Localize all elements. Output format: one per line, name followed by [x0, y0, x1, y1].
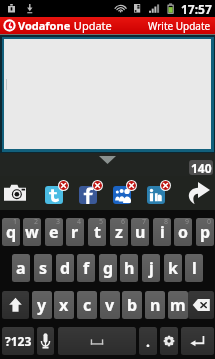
- button[interactable]: x: [54, 291, 74, 319]
- staticText: q: [6, 221, 17, 243]
- staticText: r: [71, 221, 79, 243]
- button[interactable]: r: [66, 218, 84, 246]
- staticText: Write Update: [148, 19, 211, 33]
- staticText: 6: [121, 218, 126, 227]
- button[interactable]: a: [12, 254, 30, 282]
- staticText: j: [149, 257, 154, 279]
- button[interactable]: Space: [58, 327, 136, 355]
- staticText: a: [16, 257, 26, 279]
- staticText: y: [37, 294, 47, 316]
- staticText: 5: [99, 218, 104, 227]
- button[interactable]: Hide keyboard: [99, 156, 116, 164]
- button[interactable]: i: [153, 218, 171, 246]
- button[interactable]: j: [142, 254, 160, 282]
- button[interactable]: h: [120, 254, 138, 282]
- button[interactable]: n: [145, 291, 165, 319]
- staticText: ?123: [5, 333, 32, 349]
- button[interactable]: m: [168, 291, 188, 319]
- staticText: o: [178, 221, 189, 243]
- button[interactable]: ?123: [2, 327, 34, 355]
- button[interactable]: .: [139, 327, 157, 355]
- staticText: u: [135, 221, 146, 243]
- staticText: v: [105, 294, 115, 316]
- staticText: t: [94, 221, 101, 243]
- button[interactable]: Enter: [181, 327, 214, 355]
- staticText: c: [83, 294, 92, 316]
- button[interactable]: l: [185, 254, 203, 282]
- button[interactable]: c: [77, 291, 97, 319]
- staticText: Vodafone: [18, 18, 71, 33]
- staticText: g: [103, 257, 114, 279]
- staticText: Update: [71, 18, 112, 33]
- staticText: 8: [164, 218, 169, 227]
- button[interactable]: f: [77, 254, 95, 282]
- button[interactable]: t: [88, 218, 106, 246]
- button[interactable]: p: [196, 218, 214, 246]
- staticText: 7: [142, 218, 147, 227]
- button[interactable]: s: [34, 254, 52, 282]
- staticText: e: [49, 221, 59, 243]
- staticText: 3: [56, 218, 61, 227]
- staticText: 17:57: [181, 1, 212, 17]
- staticText: p: [200, 221, 211, 243]
- button[interactable]: Camera: [4, 184, 26, 201]
- staticText: d: [60, 257, 71, 279]
- button[interactable]: w: [23, 218, 41, 246]
- staticText: .: [146, 332, 150, 351]
- staticText: k: [168, 257, 178, 279]
- staticText: w: [25, 221, 39, 243]
- staticText: i: [160, 221, 165, 243]
- staticText: l: [192, 257, 197, 279]
- button[interactable]: z: [110, 218, 128, 246]
- button[interactable]: k: [164, 254, 182, 282]
- button[interactable]: e: [45, 218, 63, 246]
- button[interactable]: u: [131, 218, 149, 246]
- button[interactable]: LinkedIn: [147, 181, 171, 205]
- staticText: 0: [207, 218, 212, 227]
- staticText: b: [127, 294, 138, 316]
- staticText: 2: [34, 218, 39, 227]
- staticText: 1: [13, 218, 18, 227]
- button[interactable]: Voice input: [37, 327, 54, 355]
- button[interactable]: Shift: [2, 291, 29, 319]
- button[interactable]: o: [174, 218, 192, 246]
- staticText: h: [124, 257, 135, 279]
- button[interactable]: q: [2, 218, 20, 246]
- button[interactable]: g: [99, 254, 117, 282]
- staticText: f: [83, 257, 90, 279]
- button[interactable]: Backspace: [188, 291, 214, 319]
- button[interactable]: Write Update: [144, 17, 215, 34]
- button[interactable]: Facebook: [79, 181, 103, 205]
- staticText: 9: [185, 218, 190, 227]
- button[interactable]: y: [32, 291, 52, 319]
- button[interactable]: Settings: [160, 327, 178, 355]
- button[interactable]: Share: [186, 181, 210, 204]
- staticText: m: [170, 294, 186, 316]
- staticText: x: [59, 294, 69, 316]
- staticText: s: [39, 257, 48, 279]
- button[interactable]: MySpace: [113, 181, 137, 205]
- button[interactable]: Twitter: [45, 181, 69, 205]
- staticText: 140: [191, 160, 212, 175]
- button[interactable]: d: [56, 254, 74, 282]
- staticText: n: [150, 294, 161, 316]
- button[interactable]: b: [122, 291, 142, 319]
- button[interactable]: v: [100, 291, 120, 319]
- staticText: z: [115, 221, 123, 243]
- staticText: 4: [77, 218, 82, 227]
